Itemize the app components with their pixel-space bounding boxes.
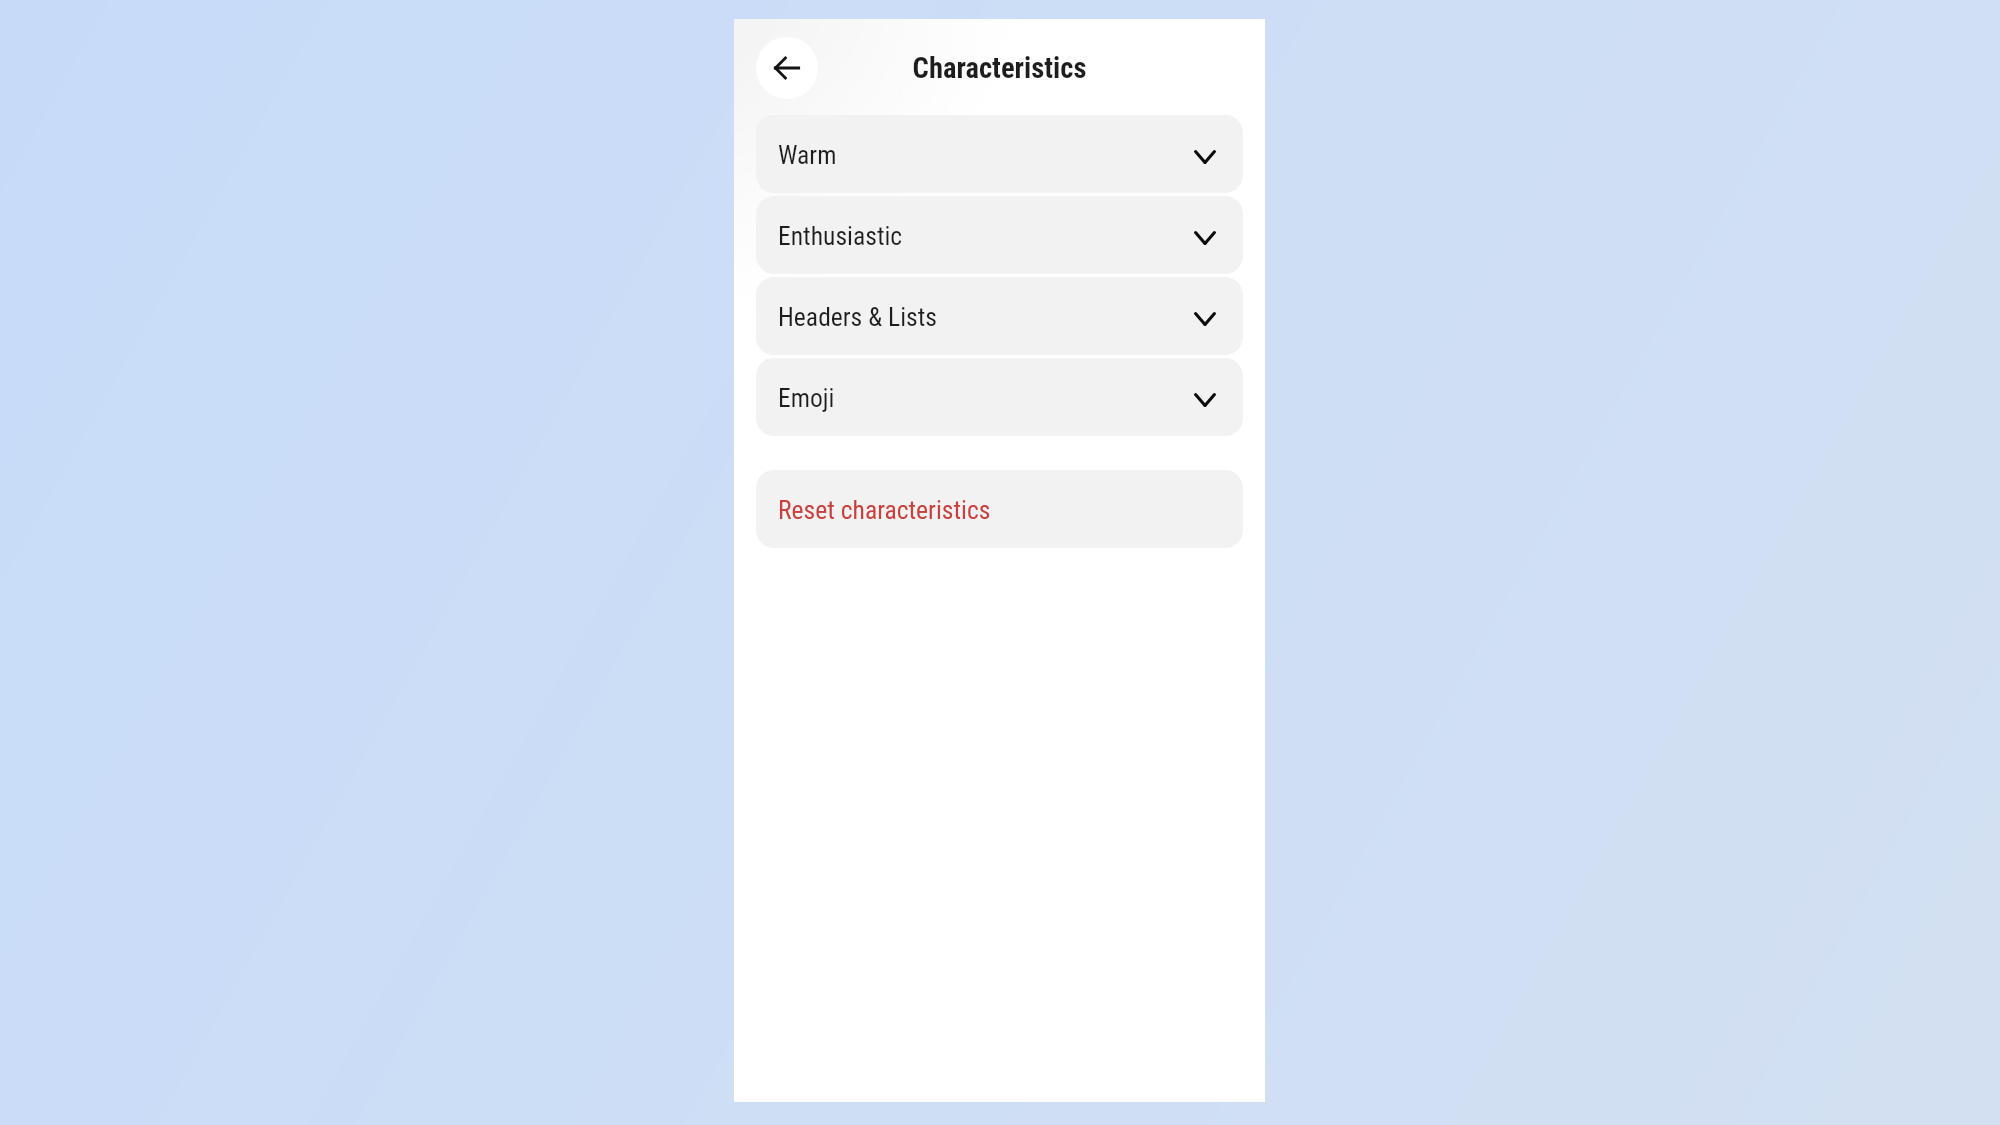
staticText: Enthusiastic (778, 221, 903, 251)
staticText: Headers & Lists (778, 302, 937, 332)
button[interactable]: Headers & Lists (756, 277, 1243, 355)
staticText: Warm (778, 140, 837, 170)
button[interactable]: Back (756, 37, 818, 99)
button[interactable]: Warm (756, 115, 1243, 193)
button[interactable]: Reset characteristics (756, 470, 1243, 548)
button[interactable]: Emoji (756, 358, 1243, 436)
staticText: Characteristics (734, 51, 1265, 85)
staticText: Emoji (778, 383, 835, 413)
button[interactable]: Enthusiastic (756, 196, 1243, 274)
staticText: Reset characteristics (778, 495, 991, 525)
